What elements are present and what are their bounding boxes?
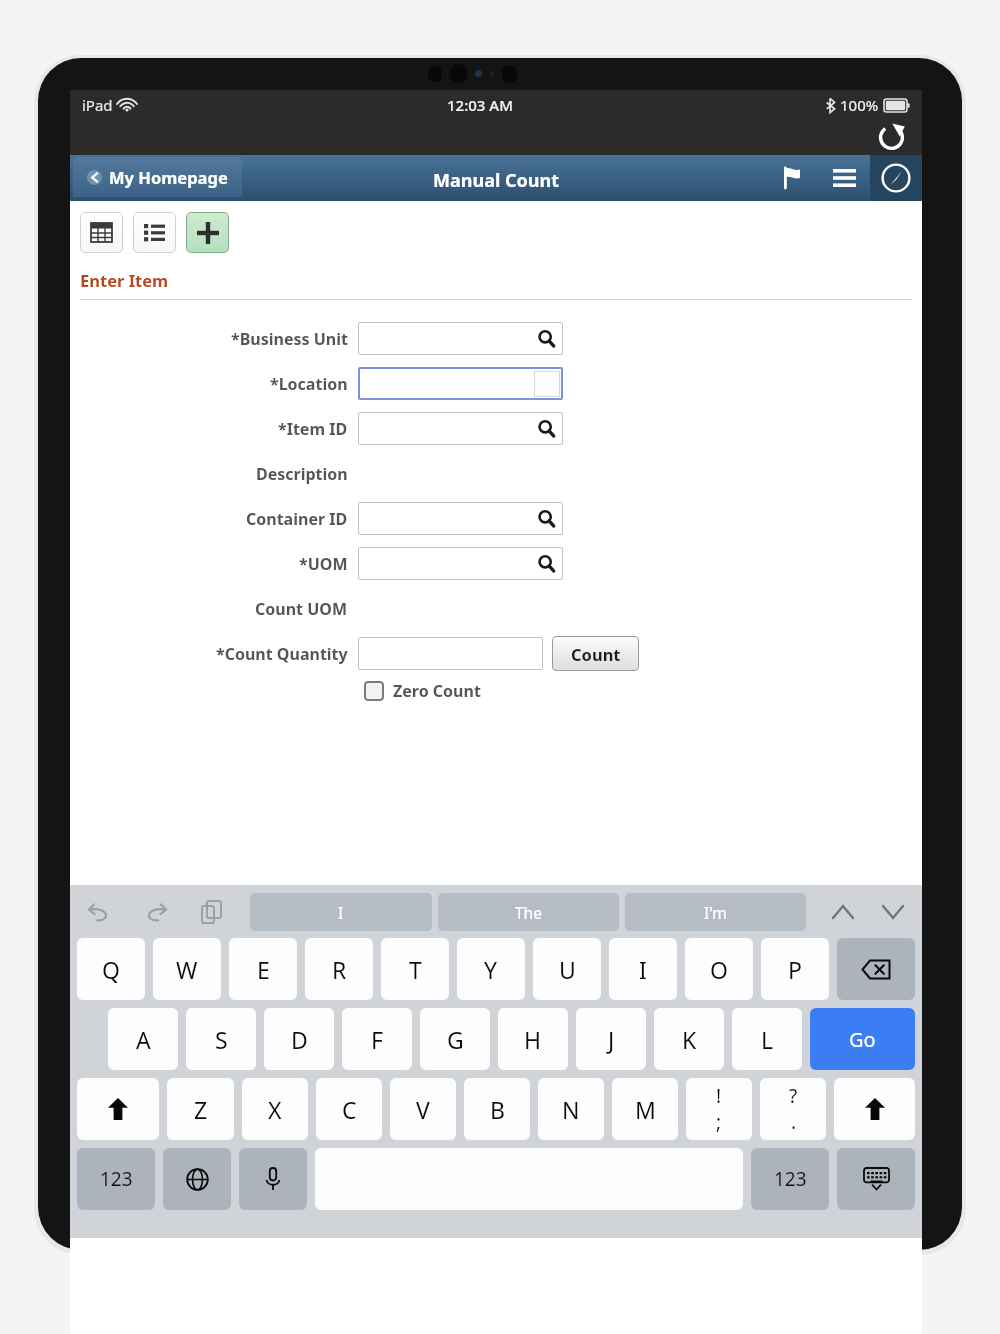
button[interactable]: Y (457, 938, 525, 1000)
staticText: *Count Quantity (216, 643, 348, 665)
button[interactable]: 123 (77, 1148, 155, 1210)
button[interactable]: Notifications (766, 155, 818, 201)
staticText: P (788, 954, 802, 985)
button[interactable] (358, 322, 563, 355)
button[interactable]: Previous field (826, 895, 860, 929)
staticText: D (291, 1024, 308, 1055)
staticText: 123 (100, 1166, 133, 1192)
button[interactable]: G (420, 1008, 490, 1070)
staticText: *Business Unit (231, 328, 348, 350)
staticText: K (682, 1024, 697, 1055)
button[interactable]: J (576, 1008, 646, 1070)
staticText: W (176, 954, 198, 985)
button[interactable]: B (464, 1078, 530, 1140)
staticText: L (761, 1024, 774, 1055)
button[interactable]: D (264, 1008, 334, 1070)
button[interactable]: Navigation (870, 155, 922, 201)
button[interactable] (358, 412, 563, 445)
staticText: Count UOM (255, 598, 348, 620)
button[interactable]: C (316, 1078, 382, 1140)
staticText: F (371, 1024, 383, 1055)
button[interactable]: List view (133, 212, 176, 253)
staticText: A (136, 1024, 151, 1055)
button[interactable]: E (229, 938, 297, 1000)
staticText: Q (102, 954, 120, 985)
button[interactable]: M (612, 1078, 678, 1140)
button[interactable] (358, 367, 563, 400)
button[interactable] (358, 502, 563, 535)
staticText: R (332, 954, 347, 985)
staticText: I (639, 954, 647, 985)
staticText: V (416, 1094, 430, 1125)
button[interactable]: Zero Count (364, 680, 481, 702)
staticText: J (608, 1024, 615, 1055)
staticText: Manual Count (433, 168, 559, 193)
staticText: M (635, 1094, 656, 1125)
button[interactable]: Menu (818, 155, 870, 201)
button[interactable]: Grid view (80, 212, 123, 253)
staticText: H (524, 1024, 542, 1055)
staticText: C (342, 1094, 357, 1125)
button[interactable]: K (654, 1008, 724, 1070)
button[interactable]: R (305, 938, 373, 1000)
button[interactable]: Go (810, 1008, 915, 1070)
staticText: 123 (774, 1166, 807, 1192)
button[interactable]: W (153, 938, 221, 1000)
button[interactable]: P (761, 938, 829, 1000)
button[interactable]: S (186, 1008, 256, 1070)
button[interactable]: Z (167, 1078, 234, 1140)
button[interactable]: Change language (163, 1148, 231, 1210)
button[interactable]: Refresh (874, 119, 908, 153)
staticText: Count (571, 643, 621, 665)
button[interactable]: H (498, 1008, 568, 1070)
button[interactable]: 123 (751, 1148, 829, 1210)
staticText: N (562, 1094, 580, 1125)
button[interactable]: Hide keyboard (837, 1148, 915, 1210)
button[interactable]: F (342, 1008, 412, 1070)
staticText: Container ID (246, 508, 348, 530)
staticText: Go (849, 1026, 876, 1053)
staticText: *Item ID (278, 418, 348, 440)
button[interactable]: Shift (834, 1078, 915, 1140)
staticText: *UOM (299, 553, 348, 575)
staticText: E (257, 954, 270, 985)
staticText: Z (194, 1094, 208, 1125)
button[interactable]: Paste (194, 895, 228, 929)
staticText: 12:03 AM (447, 95, 513, 115)
button[interactable]: I (609, 938, 677, 1000)
button[interactable]: Count (552, 636, 639, 671)
button[interactable]: N (538, 1078, 604, 1140)
button[interactable]: T (381, 938, 449, 1000)
staticText: Description (256, 463, 348, 485)
button[interactable]: Next field (876, 895, 910, 929)
button[interactable]: Shift (77, 1078, 159, 1140)
button[interactable]: Undo (82, 895, 116, 929)
button[interactable]: Redo (138, 895, 172, 929)
button[interactable]: Backspace (837, 938, 915, 1000)
button[interactable]: Q (77, 938, 145, 1000)
staticText: The (515, 902, 542, 923)
staticText: B (490, 1094, 505, 1125)
button[interactable]: I'm (625, 893, 806, 931)
button[interactable]: Add (186, 212, 229, 253)
staticText: iPad (82, 95, 113, 115)
button[interactable]: Dictation (239, 1148, 307, 1210)
button[interactable]: My Homepage (87, 157, 228, 197)
staticText: ? (789, 1083, 798, 1109)
button[interactable] (358, 547, 563, 580)
button[interactable]: A (108, 1008, 178, 1070)
button[interactable]: O (685, 938, 753, 1000)
button[interactable]: ! (686, 1078, 752, 1140)
staticText: ! (716, 1083, 722, 1109)
staticText: O (710, 954, 728, 985)
button[interactable]: The (438, 893, 619, 931)
button[interactable]: I (250, 893, 432, 931)
staticText: My Homepage (109, 166, 228, 188)
button[interactable] (358, 637, 543, 670)
button[interactable]: V (390, 1078, 456, 1140)
button[interactable]: U (533, 938, 601, 1000)
button[interactable]: ? (760, 1078, 826, 1140)
button[interactable]: X (242, 1078, 308, 1140)
button[interactable]: L (732, 1008, 802, 1070)
